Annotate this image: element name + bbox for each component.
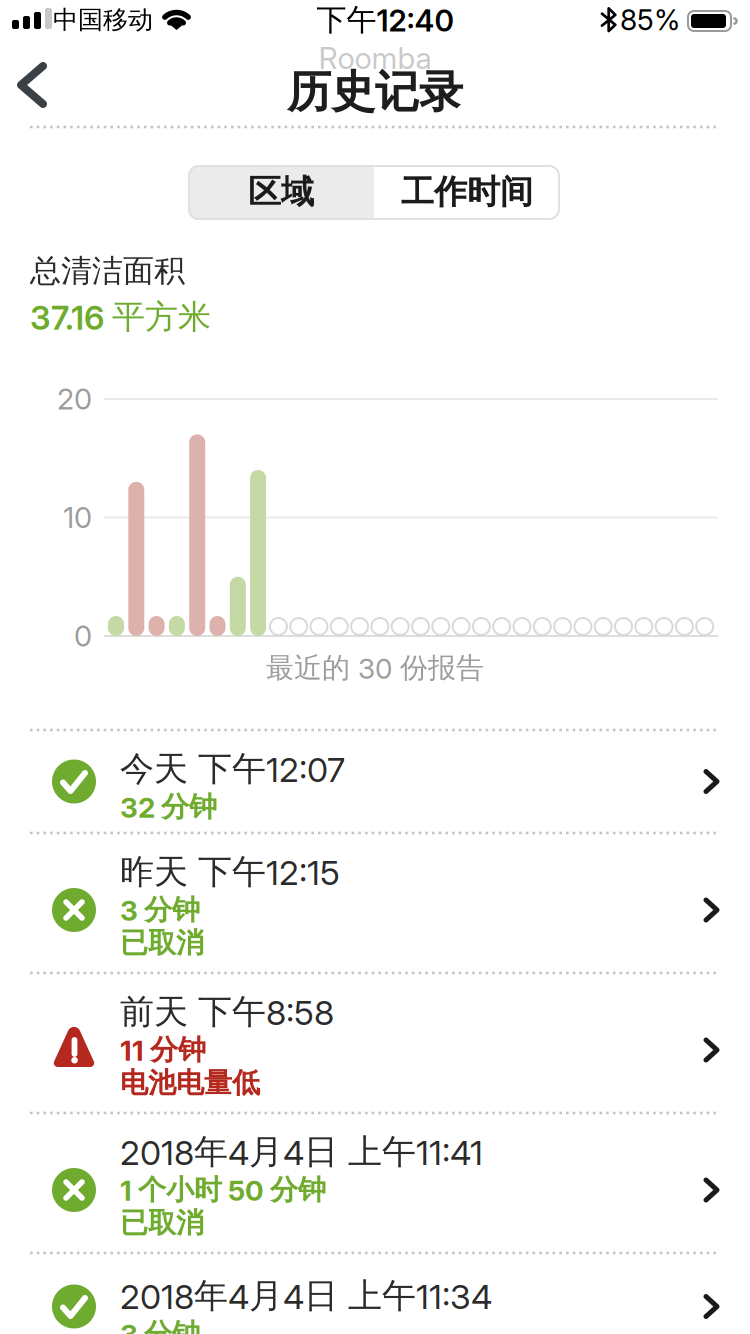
staticText: 11 分钟 [120,1032,206,1068]
staticText: 32 分钟 [120,789,217,825]
staticText: 中国移动 [53,4,153,36]
staticText: 电池电量低 [120,1065,260,1101]
staticText: 已取消 [120,1205,204,1241]
staticText: 1 个小时 50 分钟 [120,1172,326,1208]
staticText: 今天 下午12:07 [120,748,345,790]
staticText: 历史记录 [287,64,463,120]
staticText: 下午12:40 [316,1,453,39]
staticText: 总清洁面积 [30,251,185,291]
staticText: 10 [63,500,92,535]
staticText: 37.16 平方米 [30,296,211,338]
staticText: 2018年4月4日 上午11:34 [120,1275,492,1317]
staticText: 3 分钟 [120,1316,200,1334]
staticText: 85% [620,3,680,37]
staticText: 3 分钟 [120,892,200,928]
staticText: 区域 [248,171,314,213]
staticText: 最近的 30 份报告 [266,650,484,686]
staticText: 2018年4月4日 上午11:41 [120,1131,483,1173]
staticText: 0 [74,618,92,654]
staticText: 昨天 下午12:15 [120,851,340,893]
staticText: Roomba [318,40,431,76]
staticText: 工作时间 [401,171,533,213]
staticText: 20 [57,381,92,417]
staticText: 前天 下午8:58 [120,991,334,1033]
staticText: 已取消 [120,925,204,961]
